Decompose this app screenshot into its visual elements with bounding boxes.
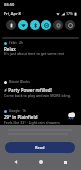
staticText: Fri, Apr 8 (4, 11, 21, 16)
button[interactable]: Read (5, 142, 75, 153)
button[interactable]: Fitbit · 4h (0, 41, 81, 57)
staticText: Come back to play and win MORE bling. (4, 93, 71, 98)
button[interactable]: Bitcoin Blocks (0, 80, 81, 99)
button[interactable]: Wi-Fi (18, 20, 28, 30)
button[interactable]: Home (33, 154, 49, 170)
staticText: 29° in Plainfield (4, 114, 38, 120)
staticText: Relax (4, 46, 16, 52)
button[interactable]: Auto rotate (53, 20, 63, 30)
staticText: 17% (66, 11, 73, 16)
button[interactable]: Battery saver (65, 20, 75, 30)
staticText: It's just about time to get some rest (4, 51, 64, 56)
staticText: Feels like 33° · Light rain showers (4, 120, 60, 125)
button[interactable]: Do not disturb (41, 20, 51, 30)
staticText: Bitcoin Blocks (9, 80, 30, 84)
button[interactable]: Recent apps (57, 154, 73, 170)
button[interactable]: Bluetooth (30, 20, 40, 30)
staticText: Fitbit · 4h (9, 41, 23, 45)
staticText: 03:50 (4, 2, 15, 7)
staticText: ⚡ Party Power refilled! (4, 87, 52, 93)
button[interactable]: Flashlight (6, 20, 16, 30)
button[interactable]: Google · 1h (0, 109, 81, 126)
button[interactable]: Back (8, 154, 24, 170)
staticText: Google · 1h (9, 109, 27, 113)
staticText: Read (35, 145, 45, 150)
